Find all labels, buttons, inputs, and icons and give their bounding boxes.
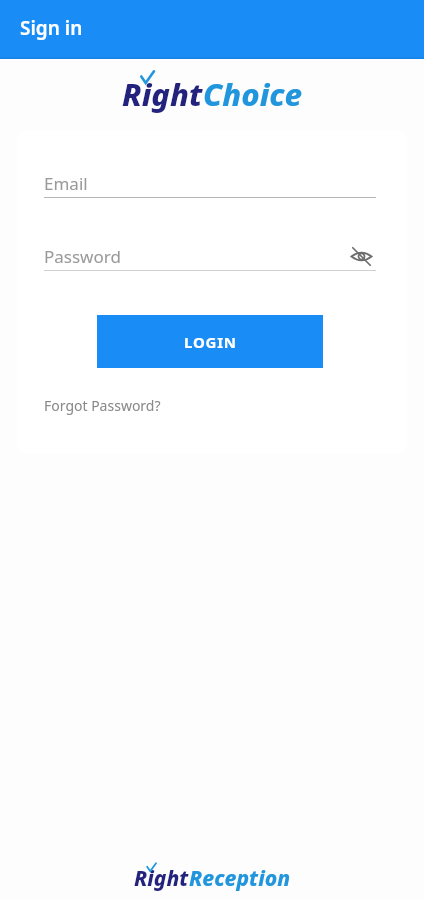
button[interactable]: Show password — [346, 242, 376, 270]
staticText: Choice — [203, 73, 303, 115]
button[interactable]: LOGIN — [97, 315, 323, 368]
staticText: Reception — [189, 864, 291, 893]
button[interactable]: Forgot Password? — [44, 394, 161, 417]
staticText: LOGIN — [184, 332, 237, 352]
button[interactable]: Password — [44, 242, 346, 270]
staticText: Sign in — [20, 15, 83, 41]
staticText: Forgot Password? — [44, 396, 161, 415]
staticText: Email — [44, 172, 88, 195]
staticText: Right — [134, 864, 189, 893]
staticText: Password — [44, 245, 121, 268]
button[interactable]: Email — [44, 169, 376, 197]
staticText: Right — [122, 73, 203, 115]
